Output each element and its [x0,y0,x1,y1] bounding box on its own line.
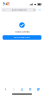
button[interactable]: Tabs [34,87,42,91]
staticText: secure-pay.com [14,9,26,11]
button[interactable]: More [36,8,43,12]
button[interactable]: Bookmarks [26,87,34,91]
staticText: AA [3,9,5,11]
button[interactable]: Back [2,87,10,91]
staticText: Payment confirmed [14,31,29,33]
button[interactable]: Return to merchant [3,35,41,40]
button[interactable]: Forward [10,87,18,91]
button[interactable]: Share [18,87,26,91]
staticText: 9:41 [3,2,10,6]
staticText: Return to merchant [14,37,30,38]
